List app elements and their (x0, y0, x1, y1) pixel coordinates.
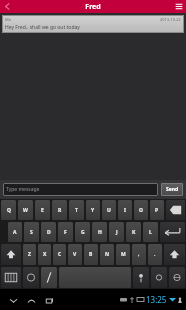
button[interactable]: F (58, 222, 73, 242)
staticText: Send (166, 186, 179, 193)
button[interactable]: Back (0, 0, 13, 13)
staticText: Z (28, 251, 31, 258)
button[interactable]: Z (23, 244, 36, 265)
staticText: P (155, 207, 159, 214)
button[interactable]: Shift (1, 244, 21, 265)
button[interactable]: Q (1, 200, 16, 220)
staticText: Type message (6, 186, 40, 193)
button[interactable]: . (148, 244, 162, 265)
staticText: . (154, 251, 156, 258)
staticText: Hey Fred.. shall we go out today (5, 24, 80, 31)
button[interactable]: Shift (164, 244, 185, 265)
staticText: X (43, 251, 47, 258)
button[interactable]: Voice (133, 267, 149, 288)
staticText: Me (5, 17, 11, 22)
staticText: 2013-10-22 (160, 17, 181, 22)
staticText: F (64, 229, 67, 236)
button[interactable]: Enter (160, 222, 185, 242)
button[interactable]: , (132, 244, 146, 265)
button[interactable]: O (134, 200, 148, 220)
button[interactable]: I (118, 200, 132, 220)
staticText: A (13, 229, 17, 236)
button[interactable]: Settings (151, 267, 167, 288)
staticText: C (58, 251, 62, 258)
button[interactable]: V (68, 244, 82, 265)
staticText: T (75, 207, 78, 214)
button[interactable]: K (126, 222, 141, 242)
button[interactable]: Symbols (1, 267, 21, 288)
staticText: K (132, 229, 136, 236)
button[interactable]: Key (59, 267, 131, 288)
button[interactable]: R (52, 200, 67, 220)
staticText: B (89, 251, 93, 258)
button[interactable]: C (53, 244, 66, 265)
button[interactable]: X (38, 244, 51, 265)
button[interactable]: Menu (172, 0, 186, 13)
button[interactable]: Send (161, 183, 183, 196)
staticText: Fred (85, 2, 101, 12)
button[interactable]: U (102, 200, 116, 220)
button[interactable]: Y (86, 200, 100, 220)
button[interactable]: M (116, 244, 130, 265)
staticText: S (30, 229, 33, 236)
button[interactable]: L (143, 222, 158, 242)
button[interactable]: Back (4, 291, 22, 309)
button[interactable]: Emoji (23, 267, 39, 288)
staticText: Y (91, 207, 95, 214)
button[interactable]: D (41, 222, 56, 242)
staticText: , (138, 251, 140, 258)
button[interactable]: J (109, 222, 124, 242)
button[interactable]: Slash (41, 267, 57, 288)
button[interactable]: Language (169, 267, 185, 288)
button[interactable]: B (84, 244, 98, 265)
staticText: Q (7, 207, 11, 214)
button[interactable]: Type message (3, 183, 158, 196)
button[interactable]: S (24, 222, 39, 242)
staticText: E (41, 207, 44, 214)
staticText: I (124, 207, 126, 214)
button[interactable]: Backspace (166, 200, 185, 220)
button[interactable]: H (92, 222, 107, 242)
button[interactable]: E (35, 200, 50, 220)
button[interactable]: Recents (40, 291, 58, 309)
staticText: O (139, 207, 143, 214)
staticText: M (121, 251, 126, 258)
button[interactable]: Home (22, 291, 40, 309)
staticText: 13:25 (146, 294, 167, 305)
button[interactable]: P (150, 200, 164, 220)
staticText: V (73, 251, 77, 258)
staticText: R (58, 207, 62, 214)
button[interactable]: A (8, 222, 22, 242)
staticText: J (116, 229, 118, 236)
button[interactable]: W (18, 200, 33, 220)
staticText: W (23, 207, 28, 214)
staticText: U (107, 207, 111, 214)
button[interactable]: Me (2, 15, 184, 33)
staticText: N (105, 251, 110, 258)
button[interactable]: T (69, 200, 84, 220)
staticText: L (149, 229, 152, 236)
button[interactable]: G (75, 222, 90, 242)
button[interactable]: N (100, 244, 114, 265)
staticText: D (47, 229, 51, 236)
staticText: H (98, 229, 102, 236)
staticText: G (81, 229, 85, 236)
